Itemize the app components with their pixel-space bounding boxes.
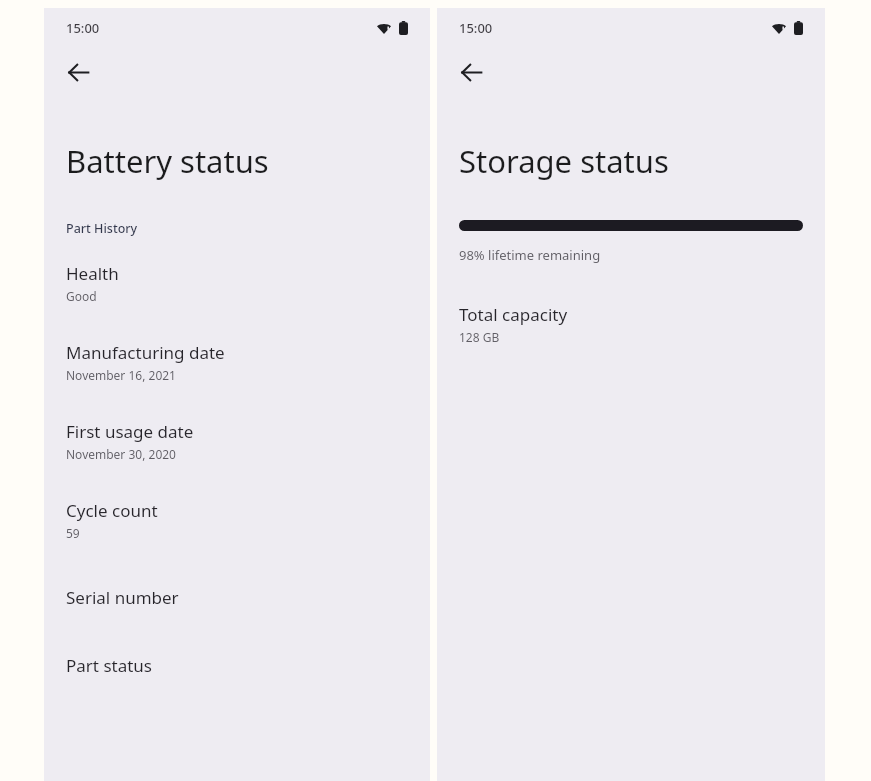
staticText: 15:00 bbox=[459, 19, 493, 37]
staticText: 98% lifetime remaining bbox=[459, 246, 601, 264]
staticText: 15:00 bbox=[66, 19, 100, 37]
staticText: Serial number bbox=[66, 586, 179, 609]
staticText: Manufacturing date bbox=[66, 341, 225, 364]
staticText: Storage status bbox=[459, 140, 669, 182]
button[interactable]: Cycle count bbox=[44, 491, 430, 549]
staticText: Good bbox=[66, 288, 97, 304]
button[interactable]: Total capacity bbox=[437, 295, 825, 353]
button[interactable]: Back bbox=[54, 48, 102, 96]
button[interactable]: Manufacturing date bbox=[44, 333, 430, 391]
staticText: November 30, 2020 bbox=[66, 446, 176, 462]
staticText: Part status bbox=[66, 654, 153, 677]
staticText: Health bbox=[66, 262, 119, 285]
staticText: Cycle count bbox=[66, 499, 158, 522]
button[interactable]: First usage date bbox=[44, 412, 430, 470]
staticText: Part History bbox=[66, 220, 138, 237]
staticText: Battery status bbox=[66, 140, 269, 182]
staticText: November 16, 2021 bbox=[66, 367, 176, 383]
staticText: 128 GB bbox=[459, 329, 500, 345]
staticText: First usage date bbox=[66, 420, 194, 443]
button[interactable]: Part status bbox=[44, 646, 430, 685]
button[interactable]: Back bbox=[447, 48, 495, 96]
staticText: 59 bbox=[66, 525, 80, 541]
staticText: Total capacity bbox=[459, 303, 568, 326]
button[interactable]: Serial number bbox=[44, 578, 430, 617]
button[interactable]: Health bbox=[44, 254, 430, 312]
